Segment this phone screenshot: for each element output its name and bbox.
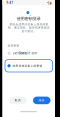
button[interactable]: 取消 — [9, 97, 26, 104]
staticText: 使用密钥登录 — [17, 16, 41, 21]
button[interactable]: 继续 — [33, 97, 50, 104]
staticText: 系统会使用此设备上保存的密钥，通过指纹、面容或屏幕锁定进行验证。 — [8, 23, 50, 33]
staticText: 使用其他设备上的密钥 — [12, 64, 42, 67]
button[interactable]: user@example.com — [7, 50, 50, 56]
staticText: 继续 — [39, 99, 45, 102]
staticText: 选择密钥 — [7, 44, 19, 47]
button[interactable]: 使用其他设备上的密钥 — [5, 60, 52, 72]
staticText: •‖ ▮ — [47, 1, 51, 5]
staticText: user@example.com — [12, 51, 36, 55]
staticText: 取消 — [15, 99, 21, 102]
staticText: 9:41 — [6, 1, 13, 4]
